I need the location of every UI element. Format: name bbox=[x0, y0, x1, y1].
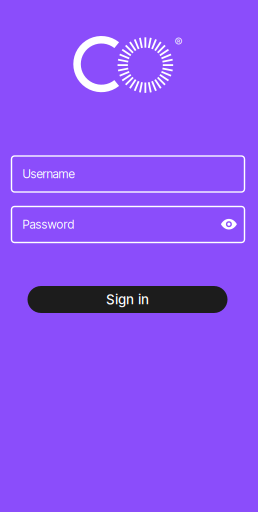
button[interactable]: Show password bbox=[214, 209, 244, 239]
staticText: ® bbox=[174, 35, 182, 49]
button[interactable]: Sign in bbox=[27, 286, 227, 313]
staticText: Username bbox=[22, 167, 74, 181]
staticText: Sign in bbox=[106, 291, 149, 307]
button[interactable]: Password bbox=[11, 206, 244, 242]
staticText: Password bbox=[22, 217, 74, 232]
button[interactable]: Username bbox=[11, 156, 244, 192]
